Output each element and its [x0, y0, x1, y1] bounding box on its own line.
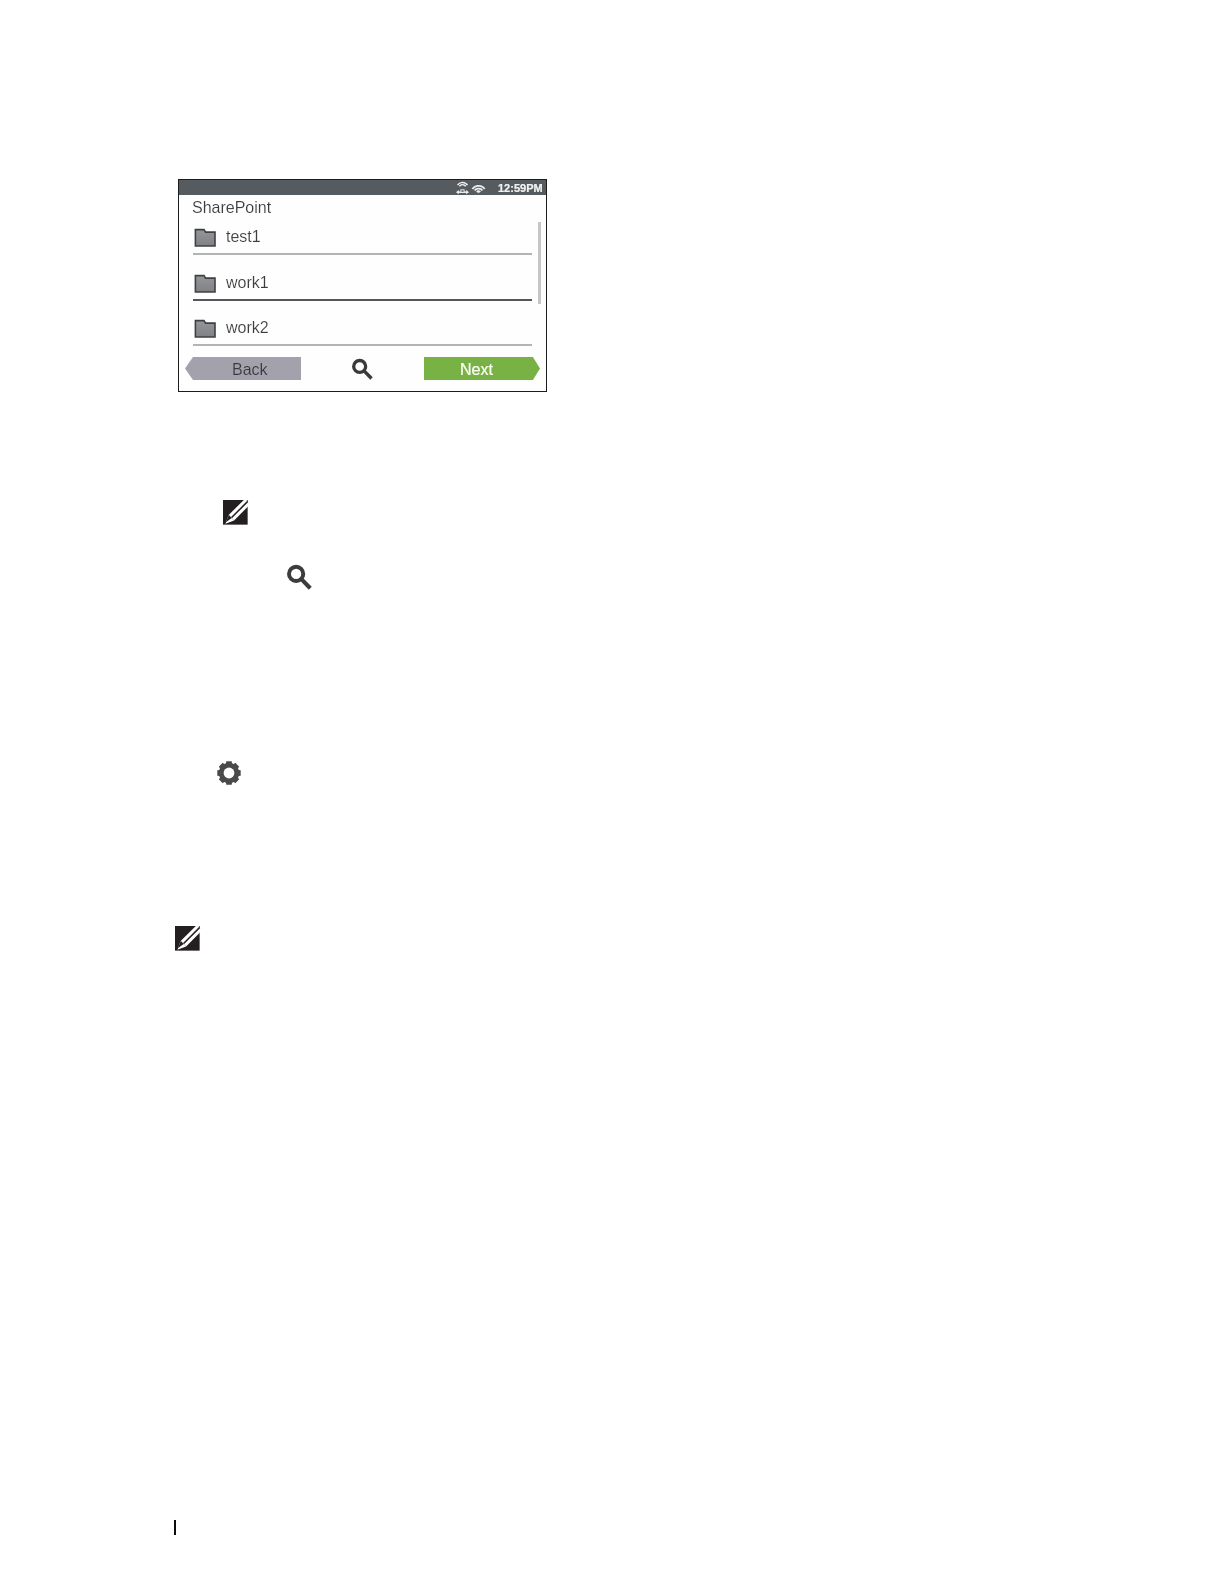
button[interactable]: work2	[179, 308, 546, 346]
button[interactable]: test1	[179, 217, 546, 255]
staticText: Next	[460, 361, 493, 379]
staticText: work1	[226, 274, 269, 292]
button[interactable]: Back	[185, 357, 301, 380]
staticText: test1	[226, 228, 261, 246]
staticText: Back	[232, 361, 268, 379]
staticText: work2	[226, 319, 269, 337]
button[interactable]: work1	[179, 263, 546, 301]
staticText: SharePoint	[192, 199, 272, 217]
staticText: 12:59PM	[498, 182, 543, 194]
button[interactable]: Next	[424, 357, 540, 380]
button[interactable]: Search	[352, 359, 373, 380]
